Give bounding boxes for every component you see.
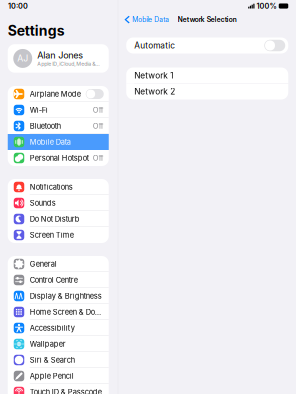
staticText: 100% [256, 2, 276, 10]
staticText: Apple Pencil [30, 371, 74, 380]
button[interactable]: Wi-Fi [8, 102, 109, 118]
button[interactable]: General [8, 256, 109, 272]
staticText: Mobile Data [132, 15, 169, 24]
staticText: Home Screen & Dock [30, 307, 102, 316]
staticText: Network 1 [134, 70, 173, 80]
staticText: Alan Jones [37, 50, 83, 61]
button[interactable]: AJ [8, 44, 109, 73]
button[interactable]: Control Centre [8, 272, 109, 288]
staticText: Accessibility [30, 323, 75, 332]
button[interactable]: Siri & Search [8, 352, 109, 368]
staticText: Airplane Mode [30, 89, 81, 98]
staticText: Off [93, 121, 104, 130]
button[interactable]: Apple Pencil [8, 368, 109, 384]
button[interactable]: Notifications [8, 179, 109, 195]
staticText: Wallpaper [30, 339, 66, 348]
button[interactable]: Screen Time [8, 227, 109, 243]
staticText: Notifications [30, 182, 73, 191]
staticText: Automatic [134, 40, 175, 50]
button[interactable]: Sounds [8, 195, 109, 211]
button[interactable]: Automatic network selection [264, 40, 285, 51]
staticText: Sounds [30, 198, 56, 207]
button[interactable]: Wallpaper [8, 336, 109, 352]
staticText: Personal Hotspot [30, 153, 89, 162]
staticText: Display & Brightness [30, 291, 102, 300]
staticText: Settings [8, 22, 65, 39]
button[interactable]: Accessibility [8, 320, 109, 336]
staticText: General [30, 259, 57, 268]
button[interactable]: Mobile Data [8, 134, 109, 150]
staticText: Control Centre [30, 275, 78, 284]
button[interactable]: Personal Hotspot [8, 150, 109, 166]
button[interactable]: Bluetooth [8, 118, 109, 134]
button[interactable]: Home Screen & Dock [8, 304, 109, 320]
staticText: Do Not Disturb [30, 214, 80, 223]
staticText: Apple ID, iCloud, Media &… [37, 61, 99, 67]
button[interactable]: Network 2 [126, 83, 288, 99]
staticText: Touch ID & Passcode [30, 387, 102, 394]
button[interactable]: Network 1 [126, 67, 288, 83]
staticText: Screen Time [30, 230, 74, 239]
button[interactable]: Display & Brightness [8, 288, 109, 304]
staticText: Mobile Data [30, 137, 71, 146]
staticText: Bluetooth [30, 121, 61, 130]
staticText: AJ [17, 53, 28, 64]
button[interactable]: Do Not Disturb [8, 211, 109, 227]
staticText: Wi-Fi [30, 105, 48, 114]
button[interactable]: Airplane Mode [8, 86, 109, 102]
staticText: Siri & Search [30, 355, 75, 364]
staticText: Off [93, 105, 104, 114]
staticText: Network Selection [178, 15, 237, 24]
staticText: 10:00 [8, 2, 28, 10]
button[interactable]: Mobile Data [121, 12, 172, 26]
staticText: Off [93, 153, 104, 162]
button[interactable]: Touch ID & Passcode [8, 384, 109, 394]
staticText: Network 2 [134, 86, 175, 96]
